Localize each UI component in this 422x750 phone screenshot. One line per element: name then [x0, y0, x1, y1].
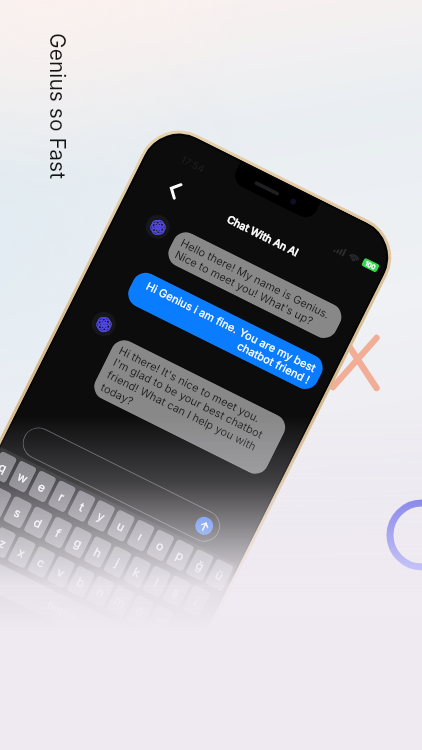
staticText: d [31, 514, 45, 531]
staticText: t [77, 499, 87, 514]
button[interactable]: ğ [185, 548, 214, 582]
staticText: p [173, 547, 187, 564]
staticText: f [53, 525, 64, 541]
button[interactable]: n [86, 575, 115, 608]
staticText: c [35, 554, 48, 571]
staticText: o [154, 538, 168, 555]
staticText: Hello there! My name is Genius. Nice to … [173, 236, 332, 333]
staticText: y [95, 508, 108, 525]
button[interactable]: u [106, 509, 136, 542]
staticText: j [112, 555, 122, 570]
staticText: l [152, 575, 161, 589]
staticText: z [0, 535, 9, 552]
button[interactable]: c [27, 545, 56, 579]
button[interactable]: Hi Genius i am fine. You are my best cha… [133, 276, 318, 386]
button[interactable]: d [23, 505, 53, 539]
staticText: ğ [193, 557, 207, 574]
staticText: q [0, 459, 10, 476]
button[interactable]: r [47, 479, 77, 513]
button[interactable]: q [0, 450, 18, 484]
button[interactable]: b [66, 565, 96, 598]
button[interactable]: e [27, 470, 57, 503]
button[interactable]: s [2, 495, 33, 529]
button[interactable]: x [7, 535, 36, 569]
button[interactable]: p [165, 538, 195, 572]
button[interactable]: w [8, 460, 37, 493]
button[interactable]: i [181, 584, 211, 618]
button[interactable]: ü [205, 558, 234, 592]
staticText: k [130, 564, 143, 580]
staticText: b [74, 574, 88, 591]
staticText: r [56, 489, 67, 505]
staticText: 17:54 [179, 153, 207, 175]
button[interactable]: a [0, 485, 12, 519]
button[interactable]: f [44, 516, 73, 549]
button[interactable]: Send [192, 514, 216, 538]
staticText: w [15, 468, 31, 486]
staticText: s [11, 505, 24, 521]
button[interactable]: l [142, 565, 172, 598]
staticText: Hi Genius i am fine. You are my best cha… [133, 276, 318, 386]
staticText: 100 [363, 260, 377, 272]
button[interactable]: m [105, 585, 135, 618]
staticText: Genius so Fast [45, 33, 70, 180]
button[interactable]: j [103, 545, 132, 579]
button[interactable]: Send [17, 422, 226, 547]
button[interactable]: z [0, 526, 17, 559]
staticText: v [54, 564, 67, 581]
staticText: h [91, 544, 105, 561]
button[interactable]: Hello there! My name is Genius. Nice to … [173, 236, 337, 335]
staticText: Hi there! It's nice to meet you. I'm gla… [99, 343, 272, 466]
staticText: a [0, 494, 4, 511]
button[interactable]: ş [162, 575, 191, 608]
staticText: e [35, 479, 48, 495]
button[interactable]: g [63, 526, 93, 559]
button[interactable]: Chat With An AI [225, 213, 301, 260]
staticText: g [71, 534, 85, 551]
button[interactable]: h [83, 535, 112, 569]
button[interactable]: o [146, 529, 175, 562]
button[interactable]: t [67, 489, 96, 523]
staticText: Chat With An AI [225, 213, 301, 260]
button[interactable]: Boşluk [0, 561, 143, 660]
staticText: ı [136, 529, 145, 543]
button[interactable]: y [87, 499, 116, 533]
button[interactable]: v [46, 555, 76, 589]
button[interactable]: Hi there! It's nice to meet you. I'm gla… [99, 343, 280, 470]
button[interactable]: ı [126, 519, 155, 552]
staticText: x [15, 544, 28, 561]
button[interactable]: Back [159, 174, 189, 204]
staticText: ü [213, 567, 227, 584]
staticText: u [114, 518, 128, 535]
button[interactable]: k [122, 555, 152, 588]
